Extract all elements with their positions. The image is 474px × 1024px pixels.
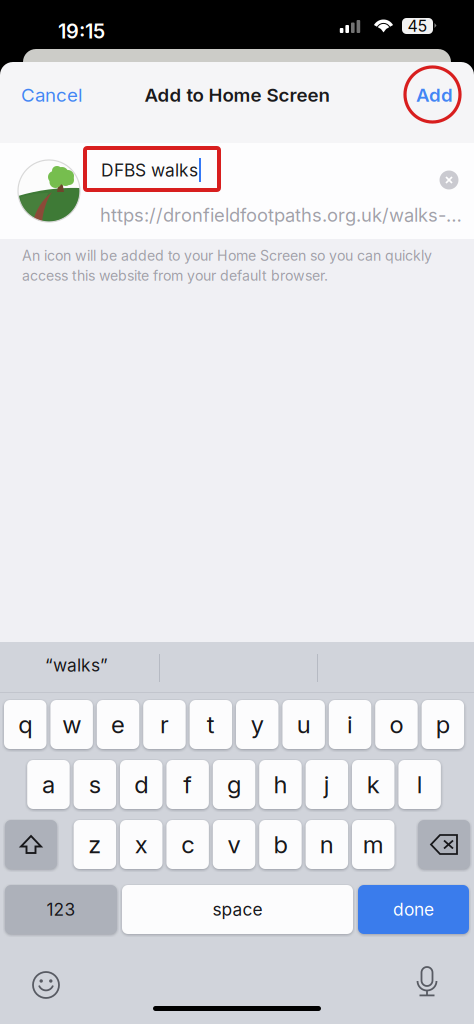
staticText: “walks” — [45, 655, 108, 675]
button[interactable]: k — [352, 760, 394, 809]
staticText: y — [251, 710, 264, 739]
staticText: Add — [416, 84, 453, 106]
staticText: x — [135, 830, 148, 859]
button[interactable]: j — [306, 760, 348, 809]
button[interactable]: Shift — [5, 820, 57, 869]
staticText: p — [436, 710, 450, 739]
button[interactable]: w — [50, 700, 93, 749]
button[interactable]: c — [166, 820, 209, 869]
staticText: Add to Home Screen — [144, 84, 329, 106]
button[interactable]: done — [358, 885, 469, 934]
button[interactable]: s — [74, 760, 116, 809]
button[interactable]: o — [375, 700, 418, 749]
button[interactable]: e — [97, 700, 139, 749]
staticText: n — [320, 830, 334, 859]
button[interactable]: z — [74, 820, 116, 869]
button[interactable]: d — [120, 760, 162, 809]
button[interactable]: g — [213, 760, 255, 809]
button[interactable]: f — [166, 760, 209, 809]
button[interactable]: q — [4, 700, 46, 749]
button[interactable]: Delete — [418, 820, 470, 869]
button[interactable]: x — [120, 820, 162, 869]
staticText: 45 — [407, 16, 427, 36]
staticText: d — [134, 770, 148, 799]
button[interactable]: b — [259, 820, 302, 869]
staticText: k — [367, 770, 380, 799]
staticText: e — [111, 710, 125, 739]
staticText: 123 — [46, 899, 75, 920]
button[interactable]: Clear text — [437, 168, 461, 192]
staticText: z — [88, 830, 101, 859]
staticText: m — [363, 830, 384, 859]
button[interactable]: Cancel — [21, 73, 101, 117]
staticText: j — [324, 770, 330, 799]
staticText: s — [89, 770, 101, 799]
staticText: t — [207, 710, 215, 739]
button[interactable]: Add — [393, 73, 453, 117]
button[interactable]: l — [398, 760, 441, 809]
staticText: b — [273, 830, 287, 859]
button[interactable]: t — [190, 700, 232, 749]
button[interactable]: i — [329, 700, 371, 749]
button[interactable]: u — [282, 700, 325, 749]
staticText: Cancel — [21, 84, 83, 106]
staticText: l — [417, 770, 423, 799]
button[interactable]: Dictate — [412, 966, 442, 998]
staticText: u — [297, 710, 311, 739]
staticText: done — [393, 899, 434, 920]
button[interactable]: Emoji — [31, 970, 61, 1000]
staticText: DFBS walks — [101, 160, 198, 180]
staticText: o — [389, 710, 403, 739]
staticText: https://dronfieldfootpaths.org.uk/walks-… — [100, 204, 462, 226]
button[interactable]: r — [143, 700, 186, 749]
staticText: An icon will be added to your Home Scree… — [22, 247, 432, 284]
staticText: r — [160, 710, 169, 739]
button[interactable]: space — [122, 885, 353, 934]
staticText: space — [212, 899, 262, 920]
staticText: v — [227, 830, 240, 859]
button[interactable]: p — [422, 700, 464, 749]
button[interactable]: n — [306, 820, 348, 869]
staticText: g — [227, 770, 241, 799]
staticText: a — [42, 770, 55, 799]
staticText: w — [62, 710, 81, 739]
staticText: q — [18, 710, 32, 739]
button[interactable]: m — [352, 820, 394, 869]
button[interactable]: 123 — [5, 885, 117, 934]
button[interactable]: h — [259, 760, 302, 809]
staticText: h — [273, 770, 287, 799]
staticText: c — [181, 830, 194, 859]
staticText: i — [347, 710, 353, 739]
button[interactable]: v — [213, 820, 255, 869]
staticText: f — [183, 770, 192, 799]
button[interactable]: a — [27, 760, 70, 809]
staticText: 19:15 — [58, 19, 105, 43]
button[interactable]: y — [236, 700, 278, 749]
